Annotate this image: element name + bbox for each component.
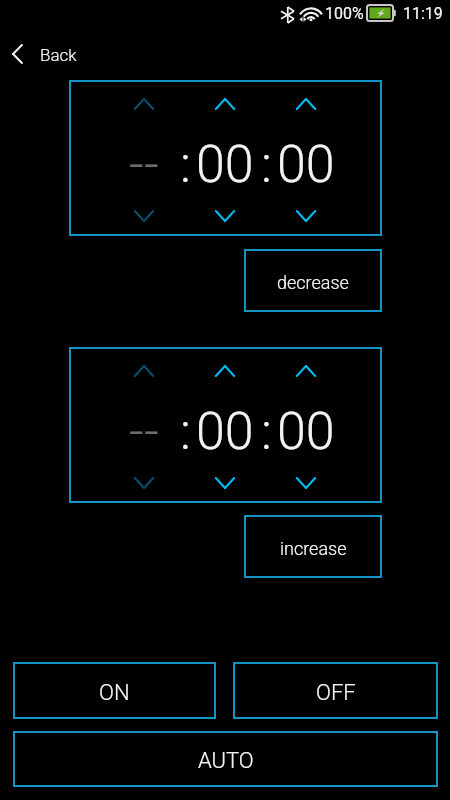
staticText: 11:19 <box>403 4 443 23</box>
button[interactable]: Increase hours <box>124 90 164 118</box>
staticText: 00 <box>277 134 335 190</box>
staticText: AUTO <box>198 748 254 774</box>
staticText: : <box>180 401 191 457</box>
staticText: Back <box>40 45 77 65</box>
staticText: : <box>261 134 272 190</box>
button[interactable]: Decrease hours <box>124 469 164 497</box>
staticText: OFF <box>316 680 356 706</box>
button[interactable]: Increase minutes <box>205 357 245 385</box>
button[interactable]: Decrease seconds <box>286 469 326 497</box>
button[interactable]: Increase seconds <box>286 357 326 385</box>
button[interactable]: OFF <box>233 662 438 719</box>
button[interactable]: Increase seconds <box>286 90 326 118</box>
button[interactable]: decrease <box>244 249 382 312</box>
staticText: : <box>261 401 272 457</box>
button[interactable]: increase <box>244 515 382 578</box>
button[interactable]: Decrease hours <box>124 202 164 230</box>
button[interactable]: Decrease minutes <box>205 469 245 497</box>
button[interactable]: AUTO <box>13 731 438 787</box>
staticText: : <box>180 134 191 190</box>
staticText: 100% <box>325 4 364 23</box>
staticText: -- <box>129 134 159 190</box>
staticText: ON <box>99 680 130 706</box>
button[interactable]: Back <box>6 36 83 72</box>
button[interactable]: Increase hours <box>124 357 164 385</box>
staticText: -- <box>129 401 159 457</box>
staticText: decrease <box>277 272 349 293</box>
button[interactable]: ON <box>13 662 216 719</box>
staticText: 00 <box>196 401 254 457</box>
button[interactable]: Decrease seconds <box>286 202 326 230</box>
staticText: 00 <box>277 401 335 457</box>
staticText: increase <box>280 538 347 559</box>
button[interactable]: Decrease minutes <box>205 202 245 230</box>
button[interactable]: Increase minutes <box>205 90 245 118</box>
staticText: 00 <box>196 134 254 190</box>
